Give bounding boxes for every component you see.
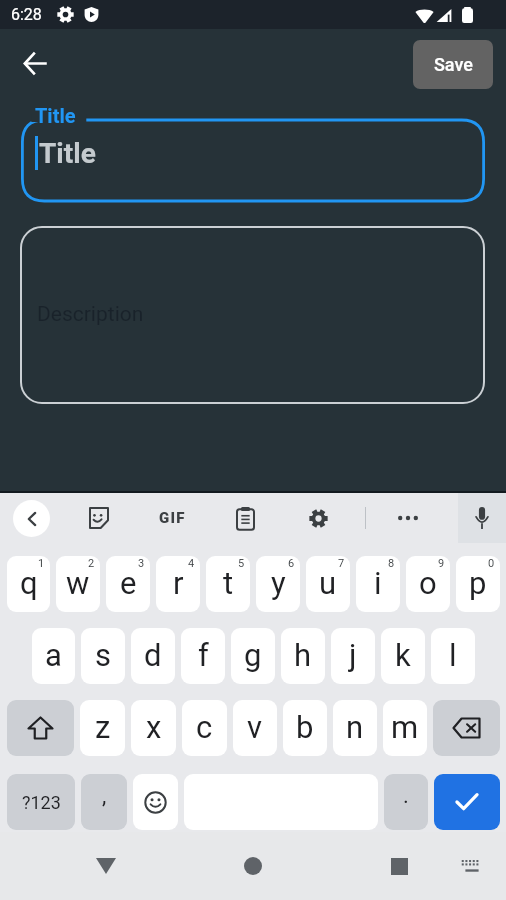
- staticText: h: [294, 637, 312, 673]
- button[interactable]: Shift: [7, 700, 74, 756]
- staticText: q: [20, 565, 38, 601]
- button[interactable]: Voice input: [458, 493, 506, 543]
- staticText: 3: [138, 557, 145, 570]
- button[interactable]: a: [32, 628, 75, 684]
- button[interactable]: More options: [387, 497, 429, 539]
- button[interactable]: f: [181, 628, 225, 684]
- button[interactable]: Hide keyboard: [446, 840, 498, 892]
- button[interactable]: y: [256, 556, 300, 612]
- staticText: i: [374, 565, 382, 601]
- button[interactable]: Stickers: [77, 497, 119, 539]
- button[interactable]: Description: [20, 226, 485, 404]
- staticText: r: [173, 565, 184, 601]
- button[interactable]: s: [81, 628, 125, 684]
- staticText: n: [346, 709, 364, 745]
- button[interactable]: Enter: [434, 774, 500, 830]
- button[interactable]: .: [384, 774, 428, 830]
- staticText: 7: [338, 557, 345, 570]
- button[interactable]: u: [306, 556, 350, 612]
- button[interactable]: k: [381, 628, 425, 684]
- staticText: g: [244, 637, 262, 673]
- button[interactable]: Back: [14, 42, 56, 84]
- staticText: 5: [238, 557, 245, 570]
- button[interactable]: c: [182, 700, 227, 756]
- button[interactable]: Back: [13, 500, 50, 537]
- button[interactable]: Settings: [297, 497, 339, 539]
- staticText: 4: [188, 557, 195, 570]
- button[interactable]: n: [333, 700, 377, 756]
- button[interactable]: o: [406, 556, 450, 612]
- staticText: c: [196, 709, 213, 745]
- staticText: m: [391, 709, 419, 745]
- button[interactable]: Back: [76, 836, 136, 896]
- staticText: d: [144, 637, 162, 673]
- staticText: v: [247, 709, 263, 745]
- staticText: u: [319, 565, 337, 601]
- staticText: b: [296, 709, 314, 745]
- staticText: w: [66, 565, 90, 601]
- staticText: Title: [35, 104, 76, 127]
- staticText: k: [395, 637, 411, 673]
- staticText: 9: [438, 557, 445, 570]
- button[interactable]: GIF: [150, 496, 194, 540]
- button[interactable]: ?123: [7, 774, 75, 830]
- staticText: 6: [288, 557, 295, 570]
- button[interactable]: Backspace: [433, 700, 500, 756]
- staticText: Description: [37, 302, 144, 327]
- button[interactable]: t: [206, 556, 250, 612]
- staticText: t: [223, 565, 234, 601]
- staticText: j: [349, 637, 357, 673]
- staticText: 0: [488, 557, 495, 570]
- button[interactable]: h: [281, 628, 325, 684]
- button[interactable]: d: [131, 628, 175, 684]
- button[interactable]: v: [233, 700, 277, 756]
- staticText: 2: [88, 557, 95, 570]
- button[interactable]: Recent apps: [369, 836, 429, 896]
- button[interactable]: z: [80, 700, 125, 756]
- staticText: o: [419, 565, 437, 601]
- button[interactable]: j: [331, 628, 375, 684]
- staticText: Save: [434, 54, 473, 75]
- staticText: .: [403, 783, 409, 809]
- staticText: z: [95, 709, 111, 745]
- button[interactable]: Save: [413, 40, 493, 89]
- staticText: GIF: [159, 509, 186, 527]
- staticText: e: [120, 565, 137, 601]
- button[interactable]: l: [431, 628, 475, 684]
- button[interactable]: ,: [81, 774, 127, 830]
- button[interactable]: Home: [223, 836, 283, 896]
- button[interactable]: Emoji: [133, 774, 178, 830]
- button[interactable]: p: [456, 556, 500, 612]
- staticText: a: [45, 637, 62, 673]
- button[interactable]: w: [56, 556, 100, 612]
- button[interactable]: m: [383, 700, 427, 756]
- staticText: ,: [102, 783, 107, 809]
- button[interactable]: Clipboard: [224, 497, 266, 539]
- staticText: x: [146, 709, 162, 745]
- staticText: ?123: [22, 792, 61, 813]
- button[interactable]: i: [356, 556, 400, 612]
- button[interactable]: b: [283, 700, 327, 756]
- staticText: f: [198, 637, 209, 673]
- staticText: 1: [38, 557, 45, 570]
- button[interactable]: e: [106, 556, 150, 612]
- button[interactable]: g: [231, 628, 275, 684]
- staticText: Title: [39, 137, 96, 170]
- staticText: p: [469, 565, 487, 601]
- staticText: 8: [388, 557, 395, 570]
- button[interactable]: r: [156, 556, 200, 612]
- staticText: y: [271, 565, 286, 601]
- staticText: s: [95, 637, 111, 673]
- button[interactable]: q: [7, 556, 50, 612]
- button[interactable]: x: [131, 700, 176, 756]
- staticText: l: [449, 637, 457, 673]
- staticText: 6:28: [11, 5, 42, 24]
